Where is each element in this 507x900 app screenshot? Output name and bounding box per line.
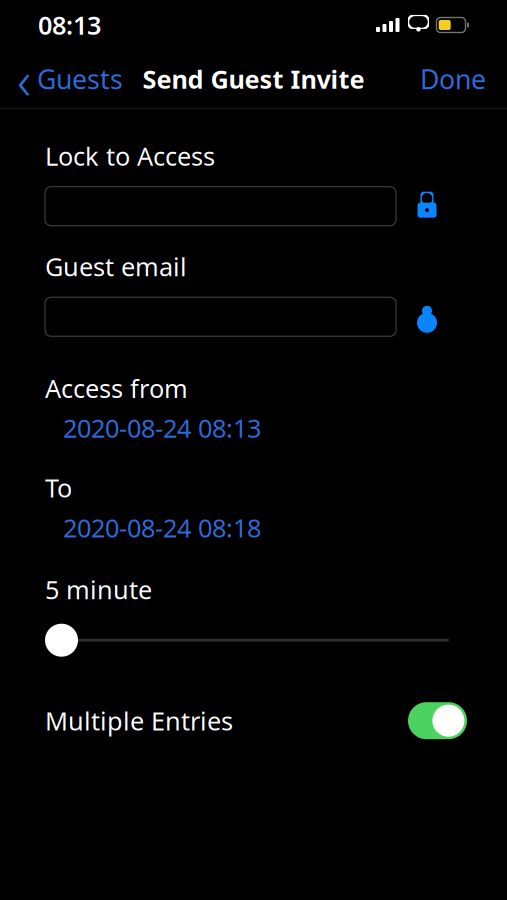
staticText: Access from [45,371,188,405]
staticText: Guest email [45,250,187,283]
staticText: Lock to Access [45,139,215,173]
staticText: 2020-08-24 08:13 [63,411,261,445]
button[interactable]: 2020-08-24 08:13 [45,405,467,443]
button[interactable]: Lock to Access [45,173,467,226]
staticText: ‹ [17,44,31,114]
staticText: Multiple Entries [45,704,233,737]
button[interactable]: 2020-08-24 08:18 [45,505,467,543]
button[interactable]: Done [402,54,504,104]
staticText: Done [420,61,486,97]
staticText: Send Guest Invite [142,62,364,96]
button[interactable]: Multiple Entries [408,702,467,739]
staticText: 2020-08-24 08:18 [63,511,261,544]
staticText: To [45,471,72,504]
staticText: 08:13 [38,8,101,42]
button[interactable]: ‹ [3,54,137,104]
staticText: 5 minute [45,573,152,606]
button[interactable]: Guest email [45,283,467,336]
staticText: Guests [37,61,123,97]
